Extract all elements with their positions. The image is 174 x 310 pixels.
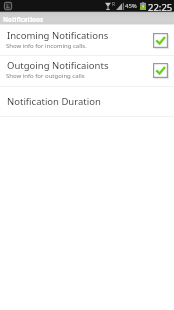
staticText: Notifications	[3, 15, 44, 23]
button[interactable]: Outgoing Notificaionts	[0, 55, 174, 86]
staticText: R	[112, 1, 116, 8]
staticText: Notification Duration	[7, 95, 101, 108]
staticText: Incoming Notifications	[7, 29, 109, 42]
button[interactable]: Toggle notification	[153, 33, 168, 48]
button[interactable]: Notifications	[0, 11, 174, 25]
staticText: 22:25	[148, 1, 173, 13]
button[interactable]: Toggle notification	[153, 63, 168, 78]
staticText: Show info for incoming calls.	[6, 42, 87, 50]
staticText: 45%	[125, 2, 137, 10]
staticText: Show info for outgoing calls	[6, 72, 85, 80]
button[interactable]: Incoming Notifications	[0, 25, 174, 56]
button[interactable]: Notification Duration	[0, 86, 174, 117]
staticText: Outgoing Notificaionts	[7, 59, 109, 72]
